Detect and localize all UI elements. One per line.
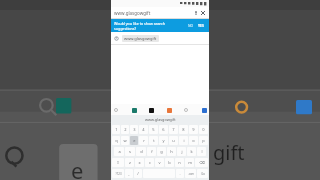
staticText: p <box>202 138 205 143</box>
button[interactable]: h <box>167 147 176 156</box>
button[interactable]: / <box>134 169 142 178</box>
button[interactable]: Clear <box>199 9 206 16</box>
staticText: ⇧ <box>116 160 120 165</box>
staticText: r <box>143 138 145 143</box>
button[interactable]: 8 <box>179 125 188 134</box>
staticText: e <box>71 155 84 180</box>
button[interactable]: n <box>175 158 184 167</box>
button[interactable]: App shortcut <box>113 107 119 113</box>
button[interactable]: i <box>179 136 188 145</box>
button[interactable]: ?123 <box>112 169 124 178</box>
button[interactable]: b <box>165 158 174 167</box>
button[interactable]: c <box>145 158 154 167</box>
button[interactable]: , <box>125 169 133 178</box>
staticText: u <box>172 138 175 143</box>
button[interactable]: App shortcut <box>131 107 137 113</box>
staticText: t <box>153 138 155 143</box>
staticText: suggestions? <box>114 26 137 31</box>
button[interactable]: 1 <box>112 125 120 134</box>
staticText: 4 <box>142 127 145 132</box>
staticText: 6 <box>162 127 165 132</box>
staticText: q <box>115 138 118 143</box>
button[interactable]: m <box>185 158 194 167</box>
button[interactable]: p <box>199 136 208 145</box>
button[interactable]: YES <box>196 22 206 29</box>
staticText: b <box>168 160 171 165</box>
staticText: v <box>158 160 161 165</box>
button[interactable]: www.glasgowgift <box>111 7 209 18</box>
button[interactable]: a <box>114 147 124 156</box>
staticText: e <box>133 138 136 143</box>
staticText: j <box>181 149 183 154</box>
button[interactable]: y <box>159 136 168 145</box>
staticText: z <box>129 160 131 165</box>
staticText: 0 <box>202 127 205 132</box>
button[interactable]: NO <box>186 22 196 29</box>
button[interactable]: x <box>135 158 144 167</box>
staticText: 9 <box>192 127 195 132</box>
staticText: www.glasgowgift <box>114 10 192 16</box>
staticText: o <box>192 138 195 143</box>
staticText: 1 <box>115 127 118 132</box>
button[interactable]: App shortcut <box>201 107 207 113</box>
staticText: g <box>160 149 163 154</box>
staticText: n <box>178 160 181 165</box>
button[interactable]: App shortcut <box>166 107 172 113</box>
staticText: k <box>190 149 193 154</box>
button[interactable]: e <box>130 136 138 145</box>
staticText: 7 <box>172 127 175 132</box>
button[interactable]: 2 <box>121 125 129 134</box>
button[interactable]: u <box>169 136 178 145</box>
staticText: YES <box>198 23 204 28</box>
button[interactable]: s <box>125 147 135 156</box>
staticText: Would you like to show search <box>114 21 165 26</box>
staticText: NO <box>188 23 194 28</box>
staticText: 2 <box>124 127 127 132</box>
button[interactable]: 0 <box>199 125 208 134</box>
staticText: c <box>149 160 151 165</box>
staticText: www.glasgowgift <box>124 36 157 41</box>
button[interactable]: App shortcut <box>183 107 189 113</box>
button[interactable]: 6 <box>159 125 168 134</box>
staticText: 8 <box>182 127 185 132</box>
button[interactable]: l <box>197 147 206 156</box>
staticText: i <box>183 138 185 143</box>
staticText: f <box>151 149 153 154</box>
staticText: ⌫ <box>199 160 205 165</box>
button[interactable]: k <box>187 147 196 156</box>
staticText: Go <box>201 172 205 176</box>
staticText: 5 <box>152 127 155 132</box>
button[interactable]: App shortcut <box>148 107 154 113</box>
button[interactable]: www.glasgowgift <box>145 117 176 122</box>
button[interactable]: Voice search <box>192 9 199 16</box>
button[interactable]: ⌫ <box>195 158 208 167</box>
button[interactable]: 4 <box>139 125 148 134</box>
button[interactable]: q <box>112 136 120 145</box>
staticText: m <box>188 160 192 165</box>
button[interactable]: ⇧ <box>112 158 124 167</box>
button[interactable]: r <box>139 136 148 145</box>
button[interactable]: g <box>157 147 166 156</box>
button[interactable]: 5 <box>149 125 158 134</box>
staticText: y <box>162 138 165 143</box>
staticText: s <box>129 149 131 154</box>
button[interactable]: j <box>177 147 186 156</box>
staticText: x <box>138 160 141 165</box>
button[interactable]: 3 <box>130 125 138 134</box>
button[interactable]: z <box>125 158 134 167</box>
button[interactable]: d <box>136 147 146 156</box>
button[interactable]: f <box>147 147 156 156</box>
button[interactable]: w <box>121 136 129 145</box>
button[interactable]: www.glasgowgift <box>111 32 209 44</box>
button[interactable]: .com <box>185 169 196 178</box>
button[interactable]: t <box>149 136 158 145</box>
button[interactable]: Go <box>197 169 208 178</box>
button[interactable]: 9 <box>189 125 198 134</box>
button[interactable]: v <box>155 158 164 167</box>
staticText: .com <box>188 172 194 176</box>
button[interactable]: o <box>189 136 198 145</box>
staticText: ?123 <box>115 172 122 176</box>
button[interactable]: 7 <box>169 125 178 134</box>
